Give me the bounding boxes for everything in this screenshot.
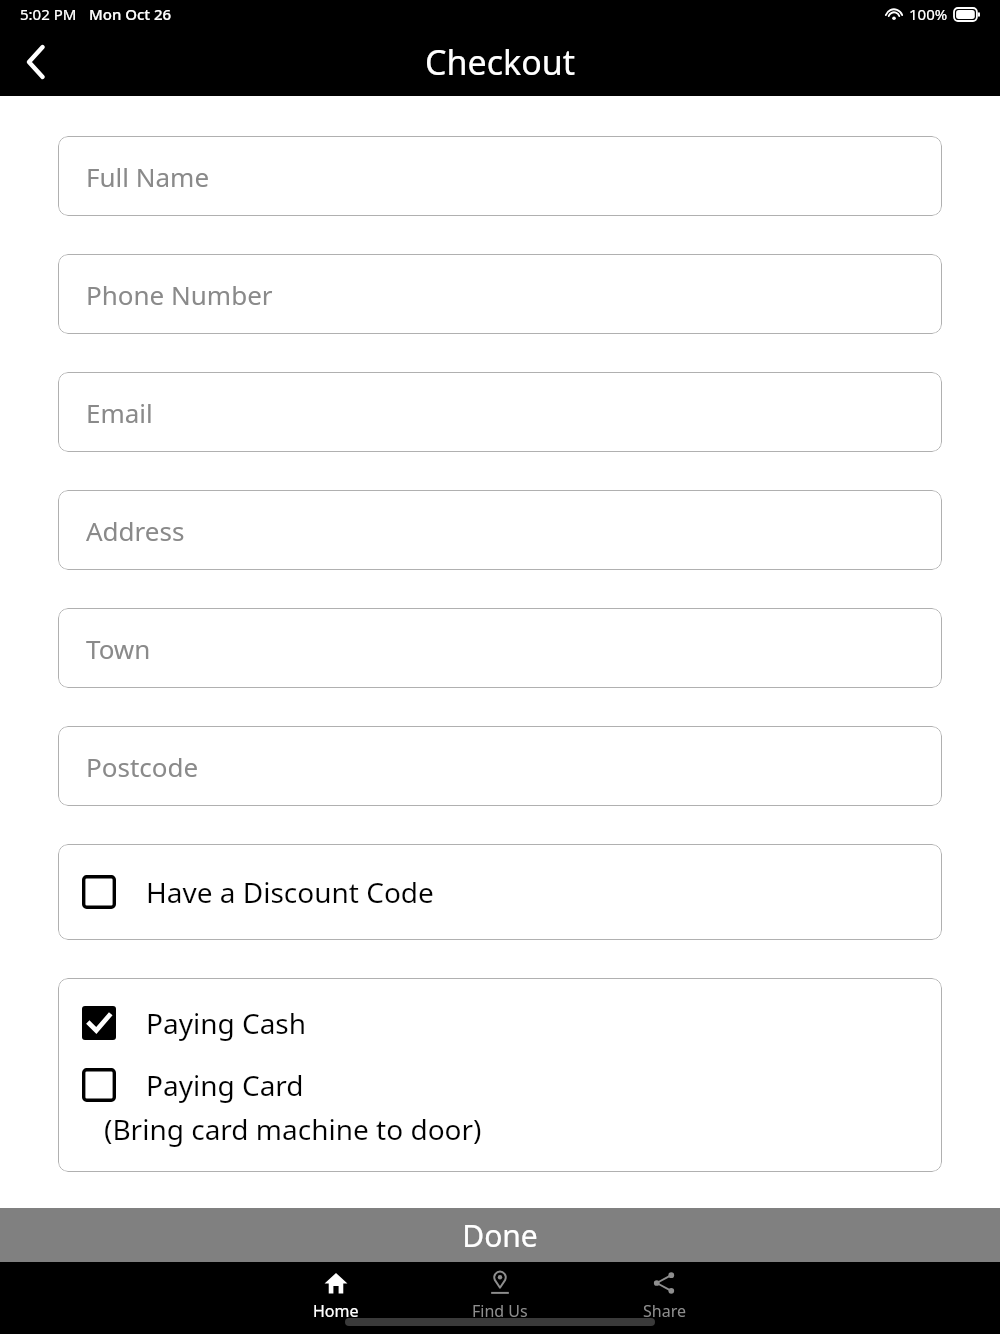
button[interactable]: Paying Cash xyxy=(58,978,942,1054)
staticText: Email xyxy=(86,395,153,430)
staticText: Find Us xyxy=(472,1300,528,1322)
button[interactable]: Done xyxy=(0,1208,1000,1262)
button[interactable]: Back xyxy=(0,26,72,98)
staticText: Town xyxy=(86,631,151,666)
staticText: 5:02 PM xyxy=(20,4,77,24)
staticText: Paying Card xyxy=(146,1066,304,1104)
button[interactable]: Email xyxy=(58,372,942,452)
button[interactable]: Paying Card xyxy=(58,1054,942,1172)
button[interactable]: Phone Number xyxy=(58,254,942,334)
staticText: Share xyxy=(643,1300,686,1322)
button[interactable]: Address xyxy=(58,490,942,570)
staticText: Paying Cash xyxy=(146,1004,307,1042)
staticText: Have a Discount Code xyxy=(146,873,434,911)
staticText: Mon Oct 26 xyxy=(89,4,172,24)
staticText: Postcode xyxy=(86,749,199,784)
staticText: Home xyxy=(313,1300,359,1322)
button[interactable]: Have a Discount Code xyxy=(58,844,942,940)
button[interactable]: Find Us xyxy=(425,1270,575,1322)
button[interactable]: Town xyxy=(58,608,942,688)
staticText: Done xyxy=(462,1215,538,1256)
staticText: Checkout xyxy=(425,39,576,85)
staticText: Phone Number xyxy=(86,277,273,312)
button[interactable]: Home xyxy=(261,1270,411,1322)
staticText: (Bring card machine to door) xyxy=(104,1110,482,1148)
button[interactable]: Share xyxy=(589,1270,739,1322)
button[interactable]: Full Name xyxy=(58,136,942,216)
staticText: 100% xyxy=(909,4,948,24)
staticText: Address xyxy=(86,513,185,548)
staticText: Full Name xyxy=(86,159,210,194)
button[interactable]: Postcode xyxy=(58,726,942,806)
